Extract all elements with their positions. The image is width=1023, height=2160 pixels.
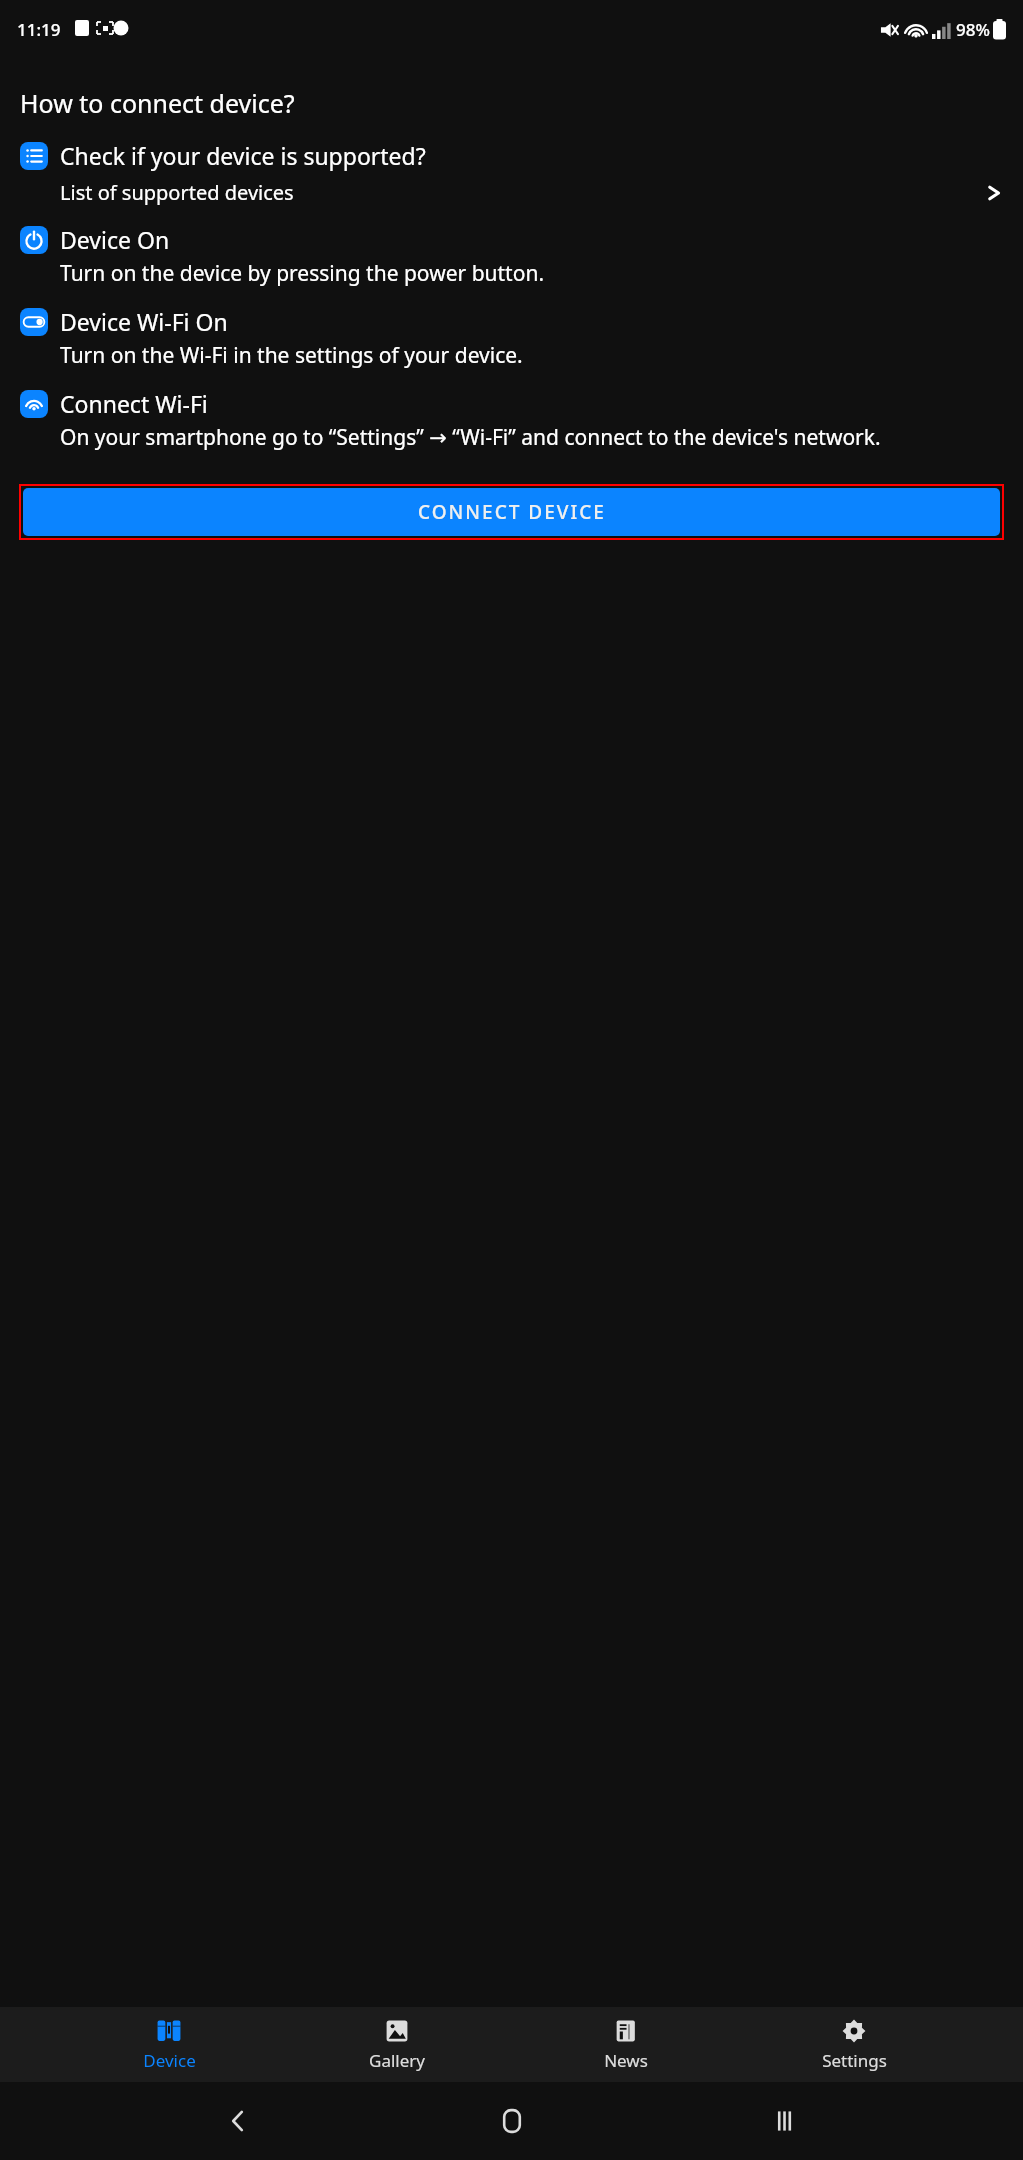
button[interactable]: Device [109,2012,229,2078]
staticText: Device On [60,224,170,255]
staticText: Turn on the device by pressing the power… [60,259,979,288]
button[interactable]: List of supported devices [0,175,1023,210]
staticText: Settings [822,2049,887,2072]
staticText: 98% [956,18,990,41]
staticText: Turn on the Wi-Fi in the settings of you… [60,341,979,370]
button[interactable]: Settings [794,2012,914,2078]
staticText: News [604,2049,648,2072]
button[interactable]: CONNECT DEVICE [23,488,1000,536]
button[interactable]: News [566,2012,686,2078]
button[interactable]: Device On [0,224,1023,255]
staticText: On your smartphone go to “Settings” → “W… [60,423,979,452]
button[interactable]: Back [203,2086,273,2156]
button[interactable]: Recents [750,2086,820,2156]
staticText: Check if your device is supported? [60,140,426,171]
button[interactable]: Device Wi-Fi On [0,306,1023,337]
staticText: Connect Wi-Fi [60,388,208,419]
button[interactable]: Check if your device is supported? [0,140,1023,171]
staticText: 11:19 [17,18,61,41]
button[interactable]: Home [477,2086,547,2156]
other: Open list [987,181,1001,205]
staticText: CONNECT DEVICE [418,499,606,525]
button[interactable]: Gallery [337,2012,457,2078]
staticText: Device Wi-Fi On [60,306,228,337]
staticText: Device [143,2049,196,2072]
staticText: How to connect device? [20,86,295,120]
staticText: List of supported devices [60,179,294,206]
button[interactable]: Connect Wi-Fi [0,388,1023,419]
staticText: Gallery [369,2049,425,2072]
